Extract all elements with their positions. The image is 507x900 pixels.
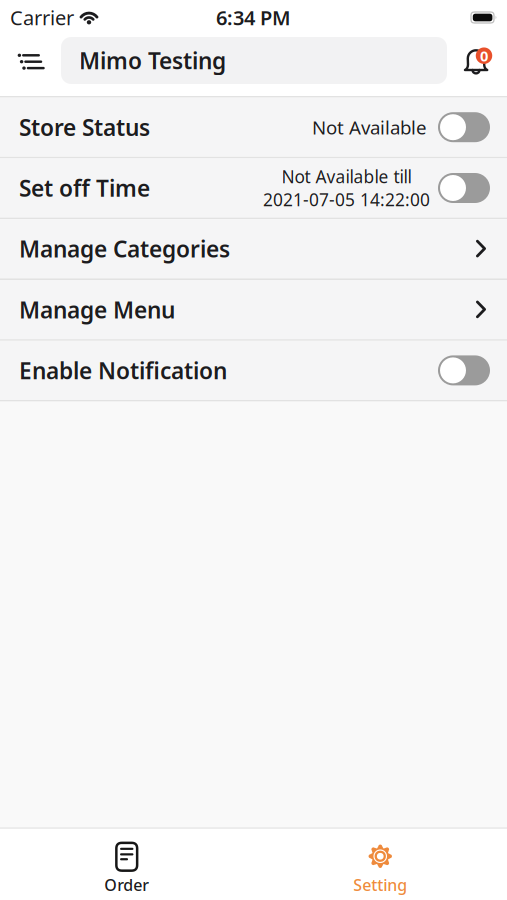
button[interactable]: Notifications (462, 44, 494, 76)
staticText: Order (104, 874, 149, 895)
staticText: Set off Time (19, 173, 150, 203)
staticText: Store Status (19, 112, 150, 142)
staticText: 6:34 PM (216, 4, 291, 31)
button[interactable]: Setting (253, 829, 507, 900)
button[interactable]: Store Status (438, 112, 490, 142)
button[interactable]: Set off Time (438, 173, 490, 203)
button[interactable]: Manage Categories (0, 219, 507, 278)
staticText: 2021-07-05 14:22:00 (263, 188, 430, 211)
staticText: Manage Menu (19, 294, 175, 325)
staticText: Manage Categories (19, 234, 230, 264)
staticText: 0 (480, 46, 488, 65)
button[interactable]: Enable Notification (438, 355, 490, 385)
staticText: Not Available till (281, 165, 411, 188)
button[interactable]: Manage Menu (0, 280, 507, 339)
button[interactable]: Order (0, 829, 253, 900)
staticText: Not Available (312, 115, 427, 140)
staticText: Setting (353, 874, 407, 895)
staticText: Enable Notification (19, 355, 227, 385)
staticText: Mimo Testing (79, 45, 226, 75)
button[interactable]: Menu (14, 45, 44, 75)
button[interactable]: Mimo Testing (61, 37, 447, 84)
staticText: Carrier (10, 4, 74, 31)
